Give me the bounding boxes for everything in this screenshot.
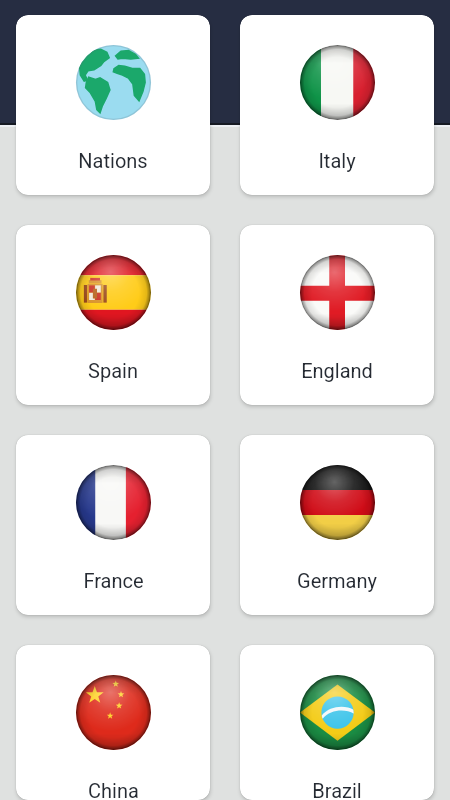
other: Germany flag xyxy=(300,465,375,540)
other: Spain flag xyxy=(76,255,151,330)
staticText: France xyxy=(83,569,144,592)
staticText: Spain xyxy=(88,359,138,382)
staticText: Germany xyxy=(297,569,377,592)
other: England flag xyxy=(300,255,375,330)
button[interactable]: Spain flag xyxy=(16,225,210,405)
staticText: Italy xyxy=(318,149,356,172)
other: Italy flag xyxy=(300,45,375,120)
button[interactable]: Germany flag xyxy=(240,435,434,615)
button[interactable]: France flag xyxy=(16,435,210,615)
staticText: China xyxy=(88,779,139,800)
staticText: Brazil xyxy=(312,779,362,800)
other: France flag xyxy=(76,465,151,540)
staticText: England xyxy=(301,359,373,382)
button[interactable]: Nations flag xyxy=(16,15,210,195)
button[interactable]: England flag xyxy=(240,225,434,405)
other: Nations flag xyxy=(76,45,151,120)
button[interactable]: China flag xyxy=(16,645,210,800)
staticText: Nations xyxy=(78,149,148,172)
button[interactable]: Italy flag xyxy=(240,15,434,195)
other: Brazil flag xyxy=(300,675,375,750)
button[interactable]: Brazil flag xyxy=(240,645,434,800)
other: China flag xyxy=(76,675,151,750)
